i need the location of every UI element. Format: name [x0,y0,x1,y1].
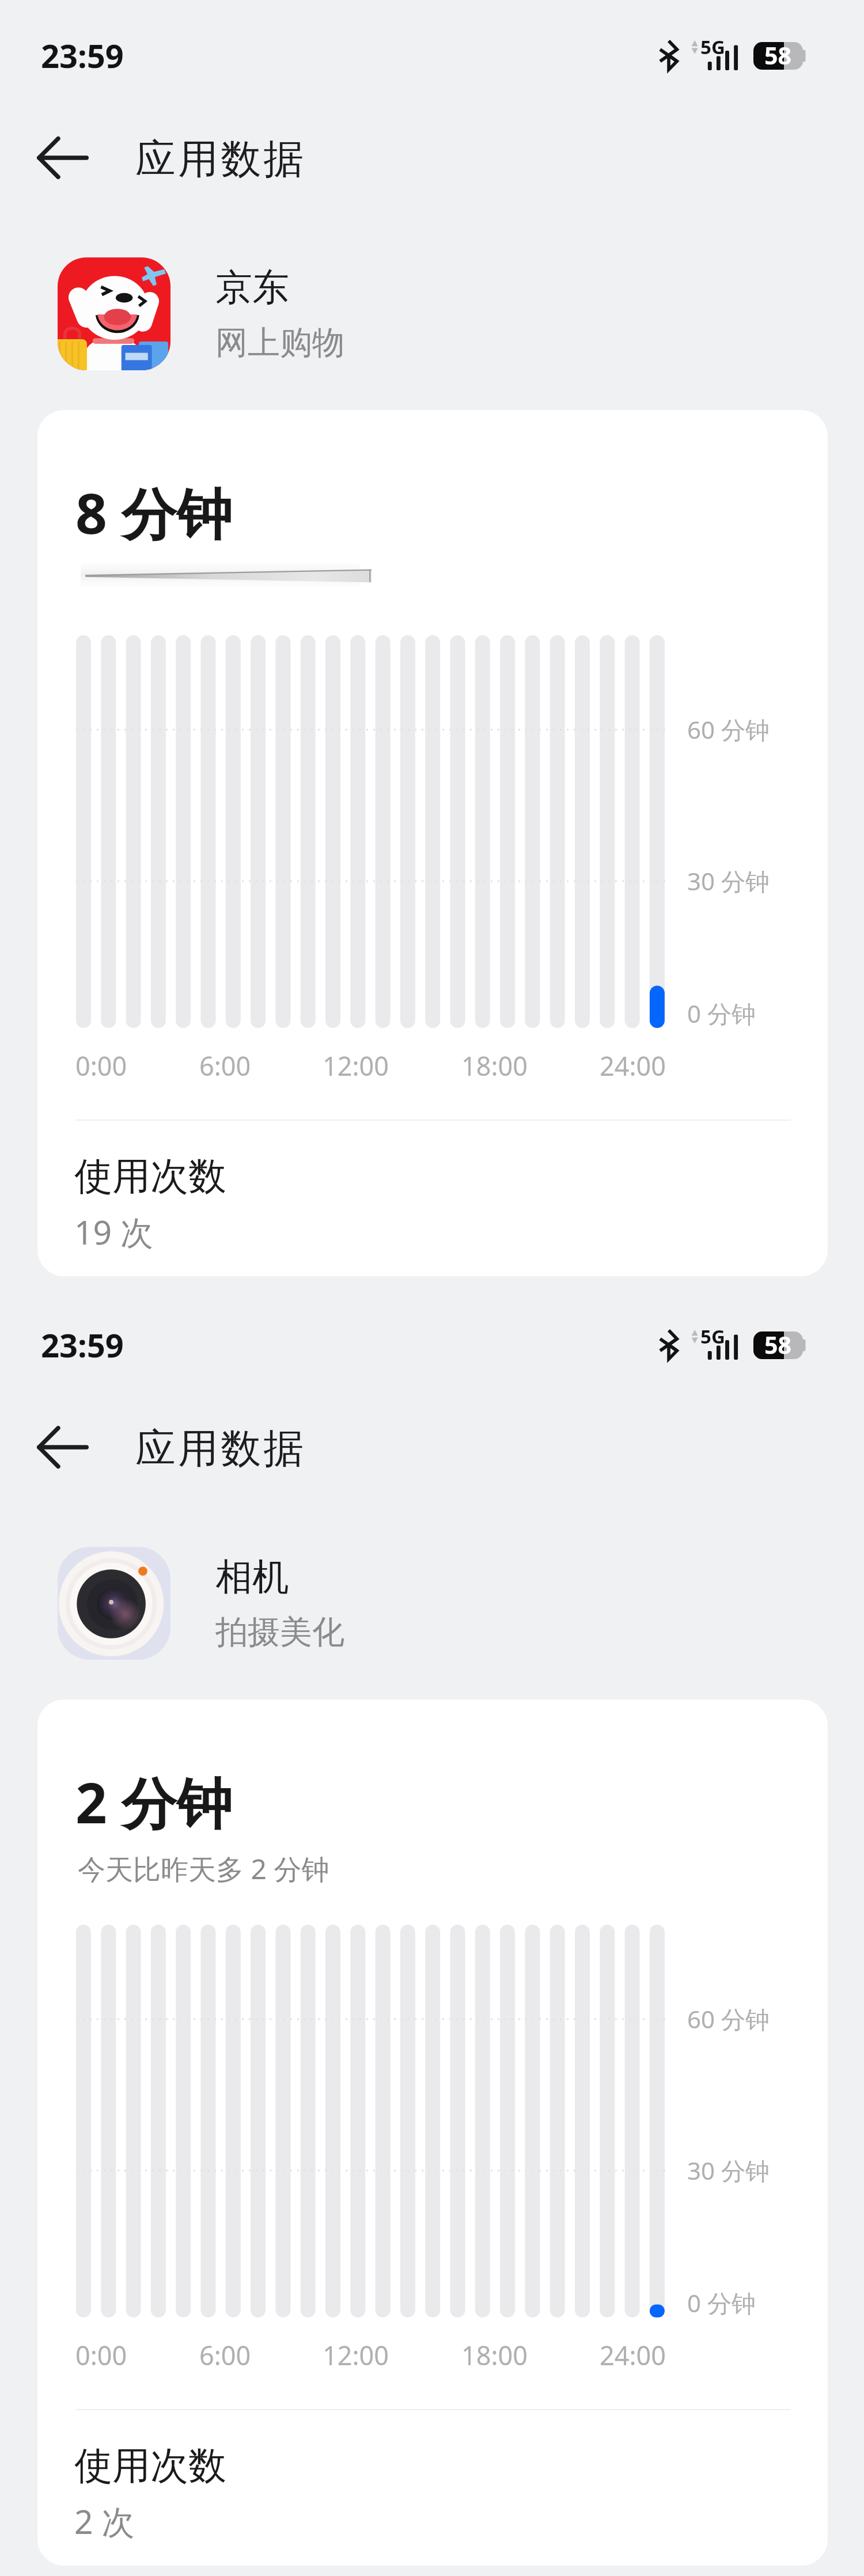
staticText: 网上购物 [215,323,344,363]
button[interactable]: Back [25,120,100,195]
staticText: 60 分钟 [687,2002,770,2035]
button[interactable]: 8 分钟 [37,410,828,1276]
staticText: 使用次数 [74,2442,226,2490]
staticText: 2 次 [74,2499,135,2544]
staticText: 5G [700,34,725,60]
staticText: 24:00 [600,2338,666,2373]
staticText: 12:00 [323,2338,389,2373]
staticText: 5G [700,1323,725,1349]
staticText: 18:00 [461,2338,528,2373]
staticText: 60 分钟 [687,713,770,746]
staticText: 0:00 [75,1048,127,1083]
staticText: 24:00 [600,1048,666,1083]
staticText: 使用次数 [74,1152,226,1200]
staticText: 18:00 [461,1048,528,1083]
staticText: 6:00 [199,1048,251,1083]
staticText: 12:00 [323,1048,389,1083]
staticText: 58 [764,1329,791,1361]
button[interactable]: Back [25,1410,100,1485]
staticText: 58 [764,39,791,71]
staticText: 2 分钟 [75,1764,232,1839]
button[interactable]: 相机 [58,1543,461,1664]
staticText: 0 分钟 [687,997,756,1030]
staticText: 30 分钟 [687,864,770,897]
staticText: 应用数据 [134,134,305,185]
staticText: 应用数据 [134,1424,305,1474]
staticText: 0:00 [75,2338,127,2373]
staticText: 拍摄美化 [215,1612,344,1653]
staticText: 京东 [215,264,289,311]
staticText: 相机 [215,1554,289,1600]
staticText: 8 分钟 [75,475,232,550]
button[interactable]: 2 分钟 [37,1699,828,2566]
staticText: 6:00 [199,2338,251,2373]
button[interactable]: 京东 [58,253,461,374]
staticText: 30 分钟 [687,2154,770,2187]
staticText: 23:59 [41,33,124,77]
staticText: 19 次 [74,1209,154,1254]
staticText: 0 分钟 [687,2286,756,2319]
staticText: 23:59 [41,1323,124,1367]
staticText: 今天比昨天多 2 分钟 [78,1850,329,1888]
